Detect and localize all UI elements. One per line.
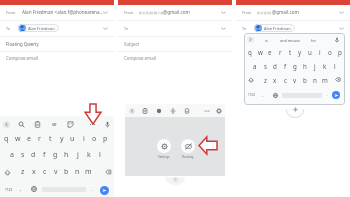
button[interactable]: Settings (214, 106, 224, 116)
button[interactable]: Send (332, 91, 340, 99)
button[interactable]: j (72, 147, 83, 163)
button[interactable]: c (39, 164, 50, 180)
button[interactable]: More (202, 106, 212, 116)
button[interactable]: Compose email (6, 55, 38, 61)
button[interactable]: l (330, 59, 340, 72)
button[interactable]: To (118, 21, 232, 35)
button[interactable]: b (300, 73, 310, 86)
button[interactable]: Language (271, 89, 280, 101)
button[interactable]: e (23, 131, 34, 147)
button[interactable]: . (89, 182, 97, 196)
button[interactable]: w (255, 45, 265, 58)
button[interactable]: One handed (182, 106, 192, 116)
button[interactable]: t (285, 45, 295, 58)
button[interactable]: f (39, 147, 50, 163)
button[interactable]: o (325, 45, 335, 58)
button[interactable]: , (259, 89, 267, 101)
button[interactable]: b (61, 164, 72, 180)
button[interactable]: w (12, 131, 23, 147)
button[interactable]: Voice (332, 35, 341, 45)
button[interactable]: f (280, 59, 290, 72)
button[interactable]: Send (100, 186, 109, 195)
button[interactable]: z (17, 164, 28, 180)
button[interactable]: i (315, 45, 325, 58)
button[interactable]: r (275, 45, 285, 58)
button[interactable]: h (61, 147, 72, 163)
button[interactable]: for (306, 35, 322, 45)
button[interactable]: Voice (102, 119, 112, 129)
button[interactable]: d (270, 59, 280, 72)
button[interactable]: l (94, 147, 105, 163)
button[interactable]: From (118, 5, 232, 19)
button[interactable]: Shift (1, 164, 14, 180)
button[interactable]: Expand (247, 36, 254, 43)
button[interactable]: y (295, 45, 305, 58)
button[interactable]: Palette (154, 106, 164, 116)
button[interactable]: v (290, 73, 300, 86)
button[interactable]: q (1, 131, 12, 147)
button[interactable]: Subject (124, 41, 140, 47)
button[interactable]: i (78, 131, 89, 147)
button[interactable]: q (245, 45, 255, 58)
button[interactable]: s (260, 59, 270, 72)
button[interactable]: k (83, 147, 94, 163)
button[interactable]: m (320, 73, 330, 86)
button[interactable]: is (258, 35, 274, 45)
button[interactable]: v (50, 164, 61, 180)
button[interactable]: z (260, 73, 270, 86)
button[interactable]: GIF (49, 119, 59, 129)
button[interactable]: Backspace (101, 164, 114, 180)
button[interactable]: To (0, 21, 114, 35)
button[interactable]: u (305, 45, 315, 58)
button[interactable]: Stickers (65, 119, 75, 129)
button[interactable]: Backspace (331, 73, 343, 86)
button[interactable]: Search (16, 119, 26, 129)
button[interactable]: To (236, 21, 350, 35)
button[interactable]: k (320, 59, 330, 72)
staticText: c (43, 167, 47, 177)
button[interactable]: n (310, 73, 320, 86)
button[interactable]: ?123 (1, 182, 17, 196)
button[interactable]: t (45, 131, 56, 147)
button[interactable]: y (56, 131, 67, 147)
button[interactable]: . (324, 89, 331, 101)
button[interactable]: Clipboard (32, 119, 42, 129)
button[interactable]: ?123 (244, 89, 258, 101)
button[interactable]: u (67, 131, 78, 147)
button[interactable]: s (17, 147, 28, 163)
button[interactable]: c (280, 73, 290, 86)
button[interactable]: x (270, 73, 280, 86)
button[interactable]: m (83, 164, 94, 180)
button[interactable]: x (28, 164, 39, 180)
button[interactable]: and mouse (277, 35, 303, 45)
button[interactable]: p (100, 131, 111, 147)
button[interactable]: r (34, 131, 45, 147)
button[interactable]: o (89, 131, 100, 147)
button[interactable]: h (300, 59, 310, 72)
button[interactable]: g (290, 59, 300, 72)
button[interactable]: Compose email (124, 55, 156, 61)
button[interactable]: d (28, 147, 39, 163)
button[interactable]: Back (1, 119, 11, 129)
button[interactable]: a (250, 59, 260, 72)
button[interactable]: Back (127, 106, 137, 116)
button[interactable]: a (6, 147, 17, 163)
button[interactable]: n (72, 164, 83, 180)
button[interactable]: Language (29, 182, 39, 196)
button[interactable]: Resize (168, 106, 178, 116)
button[interactable]: e (265, 45, 275, 58)
button[interactable]: Settings (153, 139, 175, 159)
button[interactable]: Theme (140, 106, 150, 116)
button[interactable]: From (236, 5, 350, 19)
button[interactable]: Shift (245, 73, 257, 86)
button[interactable]: Floating Qwerty (6, 41, 39, 47)
button[interactable]: From (0, 5, 114, 19)
button[interactable]: p (335, 45, 345, 58)
button[interactable]: More (87, 119, 97, 129)
button[interactable]: Floating (177, 139, 199, 159)
button[interactable]: , (17, 182, 25, 196)
button[interactable]: j (310, 59, 320, 72)
button[interactable]: g (50, 147, 61, 163)
